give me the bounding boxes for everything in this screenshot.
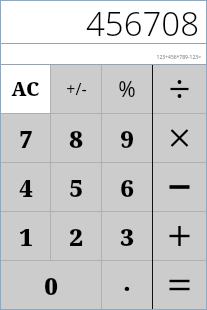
staticText: 456708: [85, 1, 199, 43]
button[interactable]: History 123+456*789-123=: [1, 44, 206, 64]
staticText: 1: [19, 220, 33, 253]
staticText: 3: [120, 220, 134, 253]
button[interactable]: Digit 2: [51, 212, 101, 260]
button[interactable]: Decimal point: [102, 261, 152, 309]
button[interactable]: All clear: [1, 65, 50, 113]
staticText: AC: [11, 76, 40, 102]
staticText: .: [123, 265, 131, 298]
staticText: 6: [120, 171, 134, 204]
staticText: 2: [69, 220, 83, 253]
button[interactable]: Plus: [153, 212, 206, 260]
staticText: 123+456*789-123=: [156, 54, 201, 61]
button[interactable]: Digit 8: [51, 114, 101, 162]
staticText: +/-: [66, 78, 87, 100]
button[interactable]: Equals: [153, 261, 206, 309]
button[interactable]: Digit 3: [102, 212, 152, 260]
staticText: 8: [69, 122, 83, 155]
button[interactable]: Digit 1: [1, 212, 50, 260]
staticText: 0: [44, 269, 58, 302]
staticText: 5: [69, 171, 83, 204]
button[interactable]: Zero: [1, 261, 101, 309]
staticText: 9: [120, 122, 134, 155]
button[interactable]: Minus: [153, 163, 206, 211]
button[interactable]: Toggle sign: [51, 65, 101, 113]
button[interactable]: Digit 5: [51, 163, 101, 211]
staticText: %: [118, 75, 136, 104]
button[interactable]: Digit 4: [1, 163, 50, 211]
button[interactable]: Divide: [153, 65, 206, 113]
staticText: 4: [19, 171, 33, 204]
staticText: 7: [19, 122, 33, 155]
button[interactable]: Digit 7: [1, 114, 50, 162]
button[interactable]: Digit 6: [102, 163, 152, 211]
button[interactable]: Digit 9: [102, 114, 152, 162]
button[interactable]: Result 456708: [1, 1, 206, 43]
button[interactable]: Multiply: [153, 114, 206, 162]
button[interactable]: Percent: [102, 65, 152, 113]
